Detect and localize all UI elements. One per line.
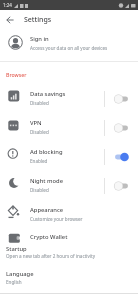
staticText: Language <box>6 270 34 278</box>
staticText: Browser <box>6 71 27 78</box>
button[interactable]: Crypto Wallet <box>0 229 138 246</box>
staticText: Disabled <box>30 100 49 106</box>
staticText: Sign in <box>30 35 49 43</box>
staticText: Night mode <box>30 177 63 185</box>
staticText: Enabled <box>30 158 48 164</box>
staticText: Open a new tab after 2 hours of inactivi… <box>6 253 96 259</box>
staticText: Ad blocking <box>30 148 63 156</box>
button[interactable]: Data savings <box>0 84 138 113</box>
staticText: VPN <box>30 119 42 127</box>
button[interactable]: VPN <box>0 113 138 142</box>
staticText: Appearance <box>30 206 64 214</box>
staticText: Access your data on all your devices <box>30 45 108 51</box>
staticText: Customize your browser <box>30 216 83 222</box>
button[interactable]: Sign in <box>0 29 138 58</box>
button[interactable]: Startup <box>6 245 27 253</box>
button[interactable]: Night mode <box>0 171 138 200</box>
button[interactable] <box>0 10 19 29</box>
staticText: Settings <box>24 15 52 25</box>
staticText: 1:24 <box>3 2 12 8</box>
staticText: Disabled <box>30 129 49 135</box>
staticText: Crypto Wallet <box>30 233 68 241</box>
button[interactable]: Ad blocking <box>0 142 138 171</box>
button[interactable]: Appearance <box>0 200 138 229</box>
button[interactable]: Language <box>6 270 34 278</box>
staticText: Disabled <box>30 187 49 193</box>
staticText: Data savings <box>30 90 66 98</box>
staticText: English <box>6 279 22 285</box>
staticText: Startup <box>6 245 27 253</box>
